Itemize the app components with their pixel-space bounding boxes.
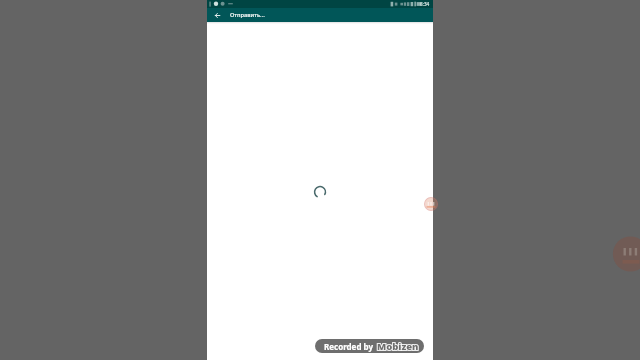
staticText: Mobizen xyxy=(377,340,419,353)
staticText: 8:34 xyxy=(420,1,430,7)
button[interactable]: Recorded by xyxy=(315,339,424,353)
staticText: Отправить... xyxy=(230,11,265,19)
staticText: Mobizen xyxy=(377,340,419,353)
staticText: Recorded by xyxy=(324,341,373,352)
button[interactable]: Back xyxy=(210,8,224,22)
button[interactable]: Mobizen recorder xyxy=(424,197,438,211)
